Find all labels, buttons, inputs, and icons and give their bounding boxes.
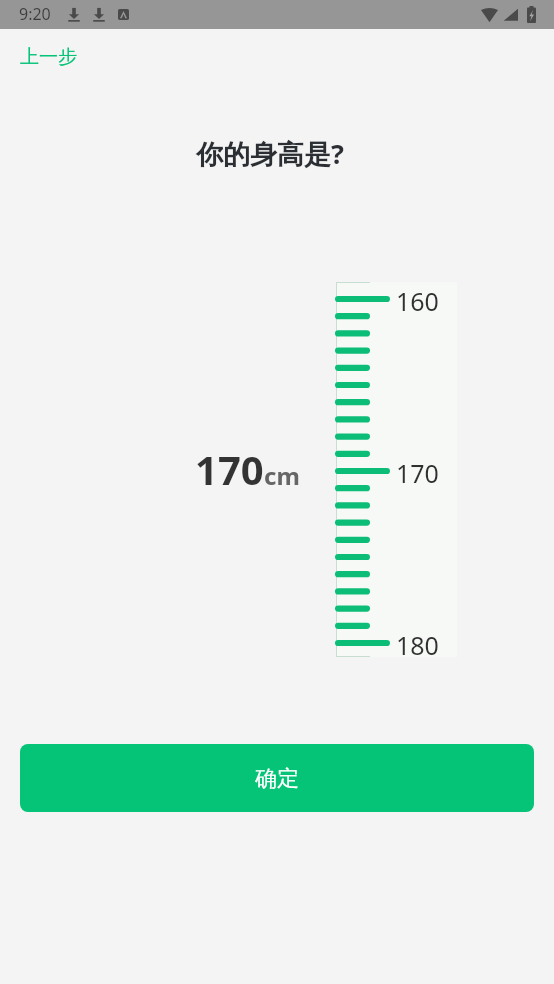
button[interactable]: 上一步 bbox=[12, 39, 85, 75]
staticText: 170 bbox=[195, 442, 264, 496]
staticText: 确定 bbox=[255, 765, 299, 793]
staticText: 180 bbox=[396, 628, 439, 662]
staticText: 160 bbox=[396, 284, 439, 318]
staticText: 9:20 bbox=[19, 3, 51, 25]
staticText: 170 bbox=[396, 456, 439, 490]
staticText: 你的身高是? bbox=[0, 135, 540, 172]
button[interactable]: Height ruler, 170 cm bbox=[336, 282, 457, 657]
button[interactable]: 确定 bbox=[20, 744, 534, 812]
staticText: 上一步 bbox=[20, 45, 77, 69]
staticText: cm bbox=[264, 459, 300, 492]
